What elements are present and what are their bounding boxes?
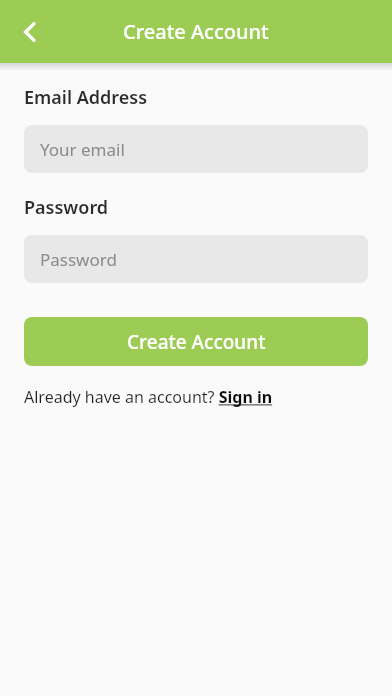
- staticText: Already have an account? Sign in: [24, 386, 273, 408]
- button[interactable]: Create Account: [24, 317, 368, 366]
- button[interactable]: Your email: [24, 125, 368, 173]
- staticText: Create Account: [123, 18, 269, 45]
- staticText: Create Account: [127, 329, 266, 355]
- button[interactable]: Already have an account? Sign in: [24, 386, 273, 408]
- staticText: Your email: [40, 138, 125, 161]
- staticText: Password: [40, 248, 117, 271]
- staticText: Password: [24, 195, 109, 220]
- staticText: Email Address: [24, 85, 148, 110]
- button[interactable]: Back: [8, 10, 52, 54]
- button[interactable]: Password: [24, 235, 368, 283]
